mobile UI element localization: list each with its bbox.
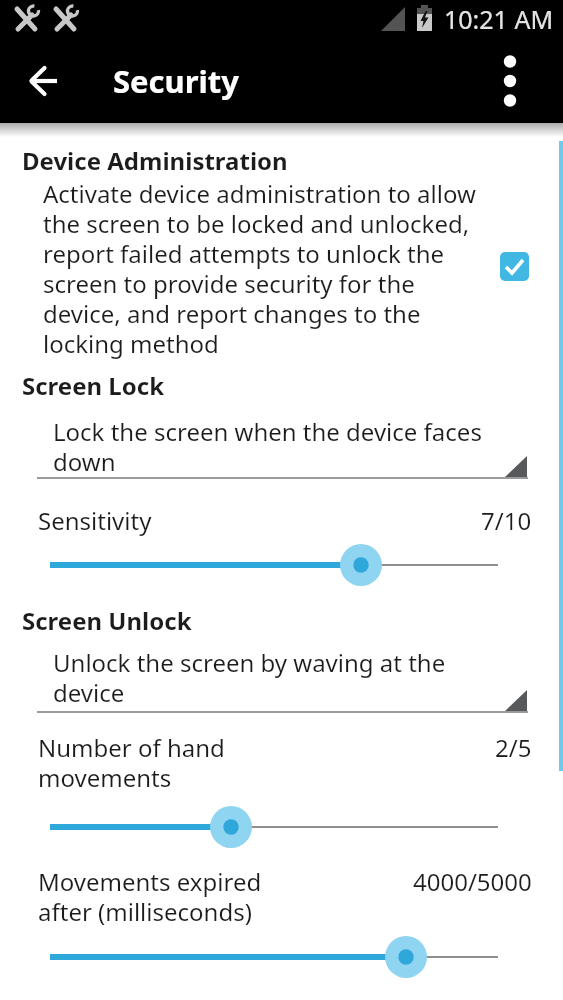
button[interactable] [500, 252, 529, 281]
button[interactable]: Lock the screen when the device faces do… [0, 408, 563, 483]
staticText: Number of hand movements [38, 731, 225, 794]
staticText: Sensitivity [38, 504, 152, 537]
staticText: 4000/5000 [413, 865, 532, 898]
staticText: 7/10 [481, 504, 532, 537]
staticText: 2/5 [495, 731, 532, 764]
staticText: Security [113, 60, 240, 102]
staticText: Screen Lock [22, 369, 165, 402]
button[interactable] [509, 38, 563, 123]
button[interactable] [0, 541, 563, 589]
staticText: Device Administration [22, 144, 288, 177]
staticText: 10:21 AM [444, 2, 554, 36]
staticText: Activate device administration to allow … [43, 177, 476, 360]
staticText: Screen Unlock [22, 604, 192, 637]
staticText: Lock the screen when the device faces do… [53, 415, 482, 478]
button[interactable] [0, 933, 563, 981]
button[interactable]: Unlock the screen by waving at the devic… [0, 640, 563, 716]
button[interactable] [0, 803, 563, 851]
staticText: Unlock the screen by waving at the devic… [53, 646, 446, 709]
button[interactable] [0, 38, 80, 123]
staticText: Movements expired after (milliseconds) [38, 865, 262, 928]
